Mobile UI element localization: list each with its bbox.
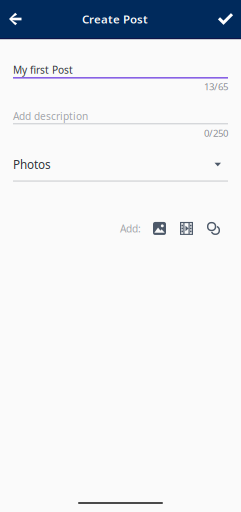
button[interactable]: Photos [13,158,228,172]
button[interactable]: Add photo [153,222,166,235]
button[interactable]: Add video [180,222,193,235]
staticText: Create Post [82,11,148,27]
staticText: 0/250 [204,126,228,140]
button[interactable]: Add link [207,222,220,235]
button[interactable]: Publish post [198,0,241,38]
staticText: My first Post [13,63,73,77]
staticText: 13/65 [204,80,228,93]
staticText: Add description [13,109,88,123]
staticText: Photos [13,157,51,173]
button[interactable]: Back [0,0,43,38]
staticText: Add: [120,222,141,235]
